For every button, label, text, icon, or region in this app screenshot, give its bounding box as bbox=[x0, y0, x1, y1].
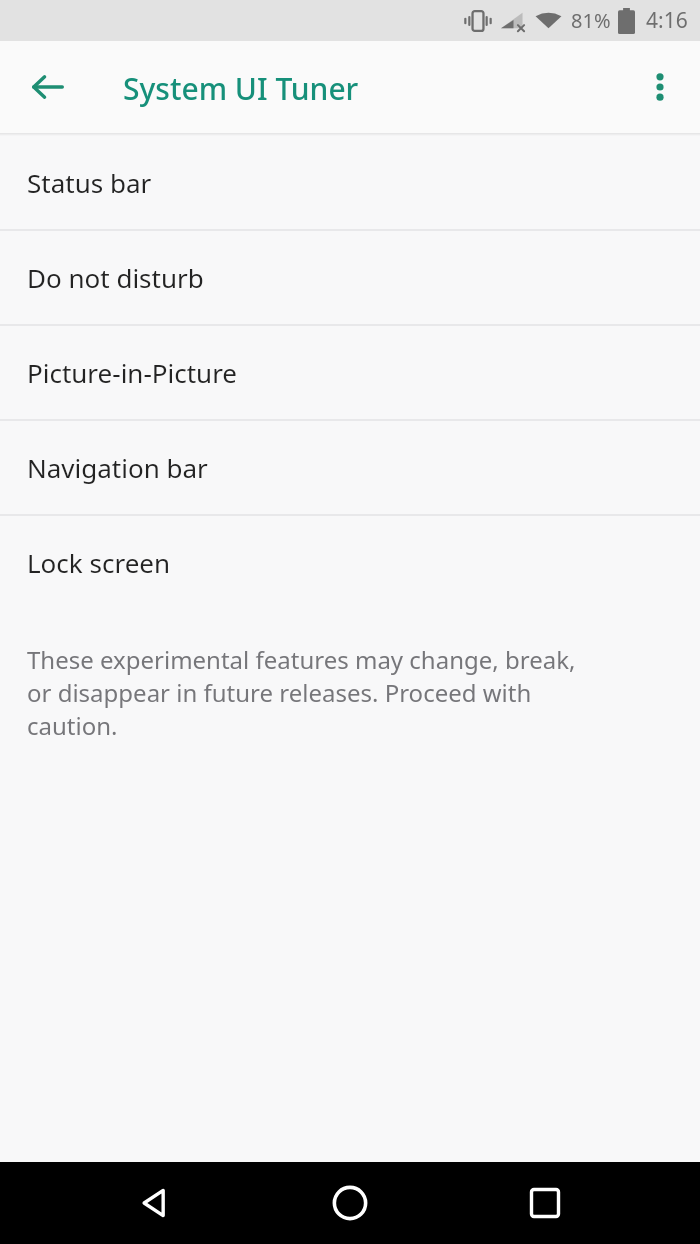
button[interactable]: Navigation bar bbox=[0, 421, 700, 514]
button[interactable]: Navigate up bbox=[20, 59, 76, 115]
staticText: 81% bbox=[571, 7, 611, 34]
button[interactable]: Lock screen bbox=[0, 516, 700, 609]
button[interactable]: Do not disturb bbox=[0, 231, 700, 324]
staticText: Picture-in-Picture bbox=[27, 355, 238, 390]
button[interactable]: Recent apps bbox=[510, 1168, 580, 1238]
staticText: 4:16 bbox=[646, 6, 688, 35]
button[interactable]: Home bbox=[315, 1168, 385, 1238]
staticText: Lock screen bbox=[27, 545, 171, 580]
button[interactable]: Picture-in-Picture bbox=[0, 326, 700, 419]
button[interactable]: Back bbox=[120, 1168, 190, 1238]
button[interactable]: More options bbox=[632, 59, 688, 115]
staticText: Status bar bbox=[27, 165, 152, 200]
button[interactable]: Status bar bbox=[0, 136, 700, 229]
staticText: These experimental features may change, … bbox=[27, 643, 590, 742]
staticText: Navigation bar bbox=[27, 450, 208, 485]
staticText: Do not disturb bbox=[27, 260, 204, 295]
staticText: System UI Tuner bbox=[123, 68, 359, 109]
